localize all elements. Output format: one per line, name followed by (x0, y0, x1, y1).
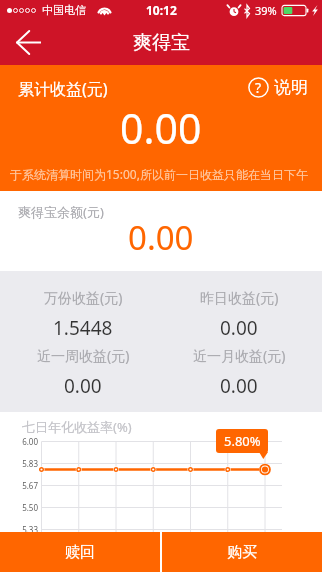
staticText: 爽得宝余额(元) (18, 203, 104, 221)
staticText: 5.33 (22, 524, 38, 535)
staticText: 七日年化收益率(%) (22, 418, 132, 436)
staticText: 0.00 (220, 315, 258, 341)
staticText: 0.00 (64, 373, 102, 399)
staticText: 近一月收益(元) (193, 346, 286, 365)
staticText: 赎回 (65, 543, 95, 562)
staticText: 5.83 (22, 458, 38, 469)
button[interactable]: 万份收益(元) (5, 288, 161, 346)
staticText: 0.00 (220, 373, 258, 399)
staticText: 昨日收益(元) (200, 288, 279, 307)
staticText: 5.67 (22, 480, 38, 491)
button[interactable]: 近一月收益(元) (161, 346, 317, 404)
staticText: 10:12 (146, 2, 177, 18)
staticText: 6.00 (22, 436, 38, 447)
button[interactable]: 昨日收益(元) (161, 288, 317, 346)
button[interactable]: 赎回 (0, 532, 160, 572)
staticText: 0.00 (128, 215, 194, 260)
staticText: 近一周收益(元) (37, 346, 130, 365)
staticText: 39% (255, 3, 277, 18)
staticText: 万份收益(元) (44, 288, 123, 307)
staticText: 1.5448 (53, 315, 113, 341)
staticText: 说明 (274, 77, 308, 98)
staticText: 累计收益(元) (18, 78, 108, 100)
button[interactable]: 购买 (162, 532, 322, 572)
button[interactable]: ? (248, 77, 308, 98)
staticText: 爽得宝 (133, 31, 190, 55)
staticText: 5.80% (224, 432, 261, 450)
staticText: 中国电信 (42, 3, 86, 17)
button[interactable]: Back (0, 20, 56, 65)
staticText: 5.50 (22, 502, 38, 513)
staticText: 0.00 (120, 100, 202, 156)
staticText: 于系统清算时间为15:00,所以前一日收益只能在当日下午15:00以后查询 (10, 166, 322, 182)
button[interactable]: 近一周收益(元) (5, 346, 161, 404)
staticText: ? (255, 78, 262, 97)
button[interactable]: 5.80% (216, 429, 268, 453)
staticText: 购买 (227, 543, 257, 562)
